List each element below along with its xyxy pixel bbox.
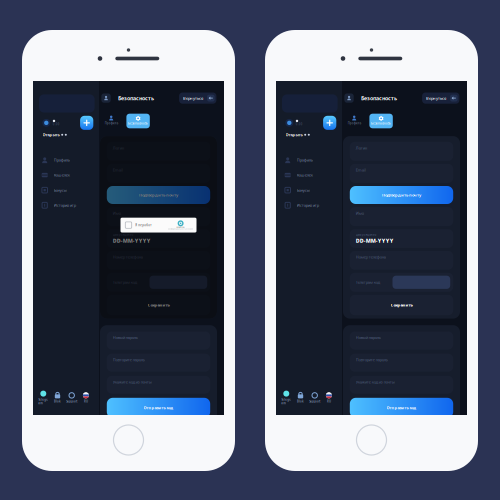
staticText: hCaptcha bbox=[177, 226, 185, 228]
button[interactable]: Пополнить bbox=[80, 116, 93, 130]
button[interactable]: Отправить код bbox=[107, 398, 210, 418]
staticText: Повторите пароль bbox=[113, 357, 145, 362]
staticText: Подтвердить почту bbox=[382, 192, 421, 198]
button[interactable]: Профиль bbox=[346, 114, 362, 128]
staticText: RU bbox=[84, 400, 88, 403]
staticText: Телеграм код bbox=[356, 280, 380, 285]
button[interactable]: Подтвердить почту bbox=[350, 186, 453, 204]
staticText: Имя bbox=[356, 210, 364, 216]
button[interactable]: Новый пароль bbox=[350, 331, 453, 349]
staticText: Бонусы bbox=[54, 187, 67, 193]
button[interactable]: Профиль bbox=[276, 152, 342, 167]
button[interactable]: Отправить код bbox=[350, 398, 453, 418]
staticText: История игр bbox=[54, 203, 76, 208]
staticText: Повторите пароль bbox=[356, 357, 388, 362]
staticText: Конфиденциальность - Условия bbox=[168, 228, 193, 230]
staticText: Телеграм код bbox=[113, 280, 137, 285]
button[interactable]: Telegram bbox=[281, 390, 292, 405]
staticText: Бонусы bbox=[297, 187, 310, 193]
button[interactable]: Бонусы bbox=[276, 183, 342, 198]
staticText: Email bbox=[113, 167, 123, 173]
staticText: Безопасность bbox=[361, 95, 397, 102]
staticText: Новый пароль bbox=[356, 335, 381, 340]
staticText: Support bbox=[66, 400, 77, 403]
button[interactable]: Вернуться bbox=[179, 92, 207, 104]
staticText: Blok bbox=[54, 400, 61, 403]
button[interactable]: Укажите код из почты bbox=[350, 376, 453, 394]
button[interactable]: Телеграм код bbox=[107, 273, 210, 292]
button[interactable]: Повторите пароль bbox=[107, 354, 210, 372]
staticText: Отправить код bbox=[143, 405, 173, 410]
button[interactable]: Вернуться bbox=[422, 92, 450, 104]
staticText: Дата рождения bbox=[113, 233, 134, 236]
button[interactable]: Blok bbox=[295, 392, 306, 403]
staticText: Сохранить bbox=[147, 302, 169, 308]
staticText: Логин bbox=[356, 145, 367, 150]
staticText: Укажите код из почты bbox=[113, 379, 152, 385]
staticText: Blok bbox=[297, 400, 304, 403]
staticText: Безопасность bbox=[128, 122, 148, 125]
button[interactable]: Назад bbox=[207, 95, 215, 101]
staticText: Открыть bbox=[43, 132, 60, 137]
staticText: Новый пароль bbox=[113, 335, 138, 340]
button[interactable]: Сохранить bbox=[107, 295, 210, 315]
staticText: Профиль bbox=[54, 157, 70, 163]
staticText: RU bbox=[327, 400, 331, 403]
staticText: Номер телефона bbox=[356, 254, 386, 260]
button[interactable]: Кошелек bbox=[33, 167, 99, 183]
button[interactable]: Telegram bbox=[38, 390, 49, 405]
button[interactable]: Укажите код из почты bbox=[107, 376, 210, 394]
staticText: Безопасность bbox=[371, 122, 391, 125]
staticText: Telegram bbox=[38, 398, 48, 405]
button[interactable]: RU bbox=[323, 392, 334, 403]
staticText: DD-MM-YYYY bbox=[113, 237, 151, 244]
button[interactable]: Безопасность bbox=[369, 114, 393, 128]
staticText: Номер телефона bbox=[113, 254, 143, 260]
staticText: Email bbox=[356, 167, 366, 173]
button[interactable]: Support bbox=[309, 392, 320, 403]
staticText: Профиль bbox=[297, 157, 313, 163]
staticText: Безопасность bbox=[118, 95, 154, 102]
staticText: История игр bbox=[297, 203, 319, 208]
staticText: 0.00 bbox=[53, 122, 60, 126]
staticText: Я не робот bbox=[135, 223, 151, 227]
staticText: Вернуться bbox=[183, 95, 203, 101]
button[interactable]: RU bbox=[80, 392, 91, 403]
button[interactable]: Имя bbox=[107, 207, 210, 226]
button[interactable]: Подтвердить почту bbox=[107, 186, 210, 204]
staticText: DD-MM-YYYY bbox=[356, 237, 394, 244]
button[interactable]: Сохранить bbox=[350, 295, 453, 315]
button[interactable]: Телеграм код bbox=[350, 273, 453, 292]
staticText: Вернуться bbox=[426, 95, 446, 101]
button[interactable]: Бонусы bbox=[33, 183, 99, 198]
button[interactable]: Дата рождения bbox=[107, 229, 210, 248]
button[interactable]: Кошелек bbox=[276, 167, 342, 183]
button[interactable]: Номер телефона bbox=[350, 251, 453, 270]
staticText: Логин bbox=[113, 145, 124, 150]
button[interactable]: Безопасность bbox=[126, 114, 150, 128]
button[interactable]: Назад bbox=[450, 95, 458, 101]
button[interactable]: Blok bbox=[52, 392, 63, 403]
staticText: Имя bbox=[113, 210, 121, 216]
staticText: 0.00 bbox=[296, 122, 303, 126]
button[interactable]: Новый пароль bbox=[107, 331, 210, 349]
staticText: Подтвердить почту bbox=[139, 192, 178, 198]
button[interactable]: Пополнить bbox=[323, 116, 336, 130]
button[interactable]: История игр bbox=[33, 198, 99, 213]
staticText: Сохранить bbox=[390, 302, 412, 308]
staticText: Telegram bbox=[281, 398, 291, 405]
button[interactable]: Support bbox=[66, 392, 77, 403]
staticText: Дата рождения bbox=[356, 233, 377, 236]
staticText: Отправить код bbox=[386, 405, 416, 410]
button[interactable]: История игр bbox=[276, 198, 342, 213]
button[interactable]: Профиль bbox=[103, 114, 119, 128]
button[interactable]: Профиль bbox=[33, 152, 99, 167]
button[interactable]: Дата рождения bbox=[350, 229, 453, 248]
button[interactable]: Повторите пароль bbox=[350, 354, 453, 372]
